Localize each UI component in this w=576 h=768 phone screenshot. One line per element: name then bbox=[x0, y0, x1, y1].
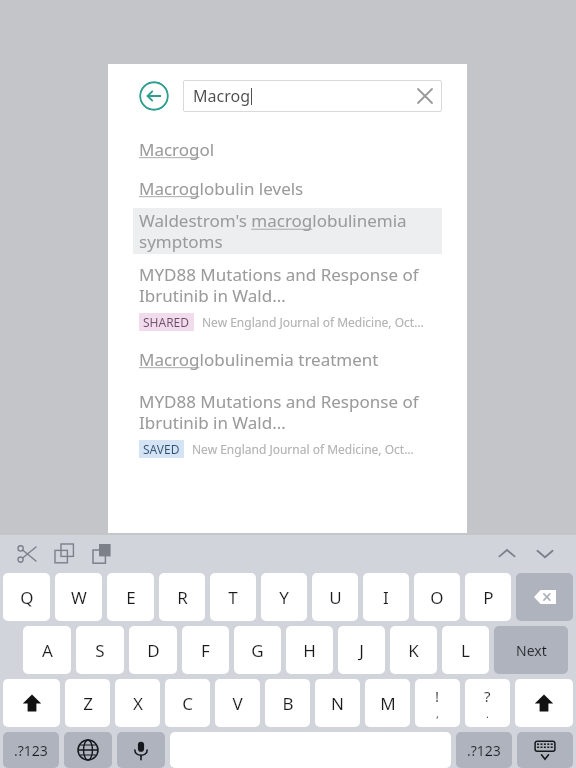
staticText: U bbox=[329, 586, 342, 609]
staticText: H bbox=[303, 639, 316, 662]
staticText: Macroglobulin levels bbox=[139, 177, 304, 200]
button[interactable]: N bbox=[315, 679, 360, 727]
staticText: . bbox=[486, 706, 489, 721]
staticText: Macrog bbox=[193, 85, 250, 107]
staticText: .?123 bbox=[467, 741, 501, 760]
button[interactable]: V bbox=[215, 679, 260, 727]
button[interactable]: S bbox=[76, 626, 124, 674]
button[interactable]: F bbox=[182, 626, 229, 674]
button[interactable]: U bbox=[312, 573, 358, 621]
button[interactable]: P bbox=[465, 573, 511, 621]
button[interactable]: Macrogol bbox=[108, 130, 467, 169]
staticText: SHARED bbox=[143, 314, 190, 330]
staticText: J bbox=[359, 639, 364, 662]
button[interactable]: Hide keyboard bbox=[517, 732, 573, 768]
button[interactable]: A bbox=[23, 626, 71, 674]
staticText: Macrogol bbox=[139, 138, 215, 161]
button[interactable]: T bbox=[210, 573, 256, 621]
button[interactable]: Macroglobulinemia treatment bbox=[108, 337, 467, 381]
button[interactable]: G bbox=[234, 626, 281, 674]
staticText: MYD88 Mutations and Response of Ibrutini… bbox=[139, 390, 442, 434]
staticText: E bbox=[126, 586, 136, 609]
button[interactable]: Backspace bbox=[516, 573, 573, 621]
staticText: SAVED bbox=[143, 441, 180, 457]
staticText: .?123 bbox=[14, 741, 48, 760]
button[interactable]: Paste bbox=[84, 535, 122, 573]
button[interactable]: O bbox=[414, 573, 460, 621]
staticText: N bbox=[331, 692, 344, 715]
button[interactable]: Next bbox=[494, 626, 568, 674]
staticText: C bbox=[182, 692, 193, 715]
button[interactable]: MYD88 Mutations and Response of Ibrutini… bbox=[108, 381, 467, 464]
staticText: ! bbox=[435, 686, 440, 706]
button[interactable]: L bbox=[442, 626, 489, 674]
button[interactable]: X bbox=[115, 679, 160, 727]
button[interactable]: Shift bbox=[3, 679, 60, 727]
staticText: New England Journal of Medicine, Oct… bbox=[192, 441, 414, 457]
button[interactable]: .?123 bbox=[3, 732, 59, 768]
staticText: S bbox=[95, 639, 105, 662]
button[interactable]: K bbox=[390, 626, 437, 674]
staticText: MYD88 Mutations and Response of Ibrutini… bbox=[139, 263, 442, 307]
button[interactable]: Cut bbox=[8, 535, 46, 573]
button[interactable]: Language bbox=[64, 732, 112, 768]
staticText: X bbox=[133, 692, 143, 715]
button[interactable]: Back bbox=[139, 81, 169, 111]
staticText: R bbox=[177, 586, 188, 609]
staticText: , bbox=[436, 706, 439, 721]
button[interactable]: Shift bbox=[515, 679, 573, 727]
button[interactable]: D bbox=[129, 626, 177, 674]
staticText: V bbox=[232, 692, 243, 715]
staticText: I bbox=[383, 586, 389, 609]
button[interactable]: W bbox=[55, 573, 102, 621]
staticText: A bbox=[42, 639, 53, 662]
button[interactable]: ? bbox=[465, 679, 510, 727]
staticText: G bbox=[251, 639, 264, 662]
button[interactable]: Dictation bbox=[117, 732, 165, 768]
staticText: ? bbox=[484, 686, 491, 706]
staticText: Q bbox=[20, 586, 34, 609]
button[interactable]: Clear search bbox=[413, 84, 437, 108]
staticText: B bbox=[282, 692, 294, 715]
button[interactable]: R bbox=[159, 573, 205, 621]
staticText: K bbox=[408, 639, 419, 662]
button[interactable]: MYD88 Mutations and Response of Ibrutini… bbox=[108, 254, 467, 337]
button[interactable]: Macroglobulin levels bbox=[108, 169, 467, 208]
button[interactable]: B bbox=[265, 679, 310, 727]
button[interactable]: I bbox=[363, 573, 409, 621]
staticText: T bbox=[228, 586, 238, 609]
button[interactable]: Next field bbox=[526, 535, 564, 573]
staticText: Next bbox=[516, 641, 547, 660]
button[interactable]: Previous bbox=[488, 535, 526, 573]
staticText: Waldestrom's macroglobulinemia symptoms bbox=[139, 209, 436, 253]
button[interactable]: Copy bbox=[46, 535, 84, 573]
staticText: New England Journal of Medicine, Oct… bbox=[202, 314, 424, 330]
staticText: Macroglobulinemia treatment bbox=[139, 348, 379, 371]
button[interactable]: Z bbox=[65, 679, 110, 727]
button[interactable]: H bbox=[286, 626, 333, 674]
button[interactable]: M bbox=[365, 679, 410, 727]
button[interactable]: J bbox=[338, 626, 385, 674]
staticText: Z bbox=[83, 692, 93, 715]
staticText: Y bbox=[279, 586, 289, 609]
staticText: W bbox=[71, 586, 87, 609]
button[interactable]: .?123 bbox=[456, 732, 512, 768]
button[interactable]: Y bbox=[261, 573, 307, 621]
staticText: L bbox=[461, 639, 470, 662]
button[interactable]: C bbox=[165, 679, 210, 727]
staticText: D bbox=[147, 639, 160, 662]
button[interactable]: Waldestrom's macroglobulinemia symptoms bbox=[133, 208, 442, 254]
staticText: O bbox=[430, 586, 444, 609]
staticText: P bbox=[483, 586, 494, 609]
button[interactable]: Q bbox=[3, 573, 50, 621]
button[interactable]: Macrog bbox=[183, 80, 442, 112]
button[interactable]: E bbox=[107, 573, 154, 621]
staticText: F bbox=[201, 639, 210, 662]
button[interactable]: ! bbox=[415, 679, 460, 727]
staticText: M bbox=[380, 692, 396, 715]
